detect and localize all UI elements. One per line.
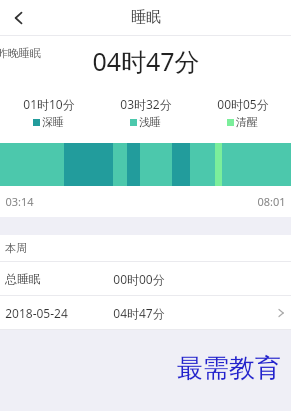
button[interactable]: Back xyxy=(0,0,38,35)
staticText: 本周 xyxy=(5,241,27,255)
staticText: 03时32分 xyxy=(120,96,172,112)
staticText: 昨晚睡眠 xyxy=(0,46,41,60)
staticText: 睡眠 xyxy=(131,8,161,27)
button[interactable]: 总睡眠 xyxy=(0,262,291,295)
staticText: 04时47分 xyxy=(92,44,200,78)
staticText: 浅睡 xyxy=(139,115,161,129)
staticText: 08:01 xyxy=(257,194,286,209)
staticText: 04时47分 xyxy=(113,305,165,321)
staticText: 00时00分 xyxy=(113,271,165,287)
staticText: 深睡 xyxy=(42,115,64,129)
button[interactable]: 2018-05-24 xyxy=(0,296,291,329)
staticText: 最需教育 xyxy=(177,352,281,385)
staticText: 总睡眠 xyxy=(5,271,41,286)
staticText: 00时05分 xyxy=(217,96,269,112)
staticText: 2018-05-24 xyxy=(5,305,68,321)
staticText: 01时10分 xyxy=(23,96,75,112)
staticText: 03:14 xyxy=(5,194,34,209)
staticText: 清醒 xyxy=(236,115,258,129)
